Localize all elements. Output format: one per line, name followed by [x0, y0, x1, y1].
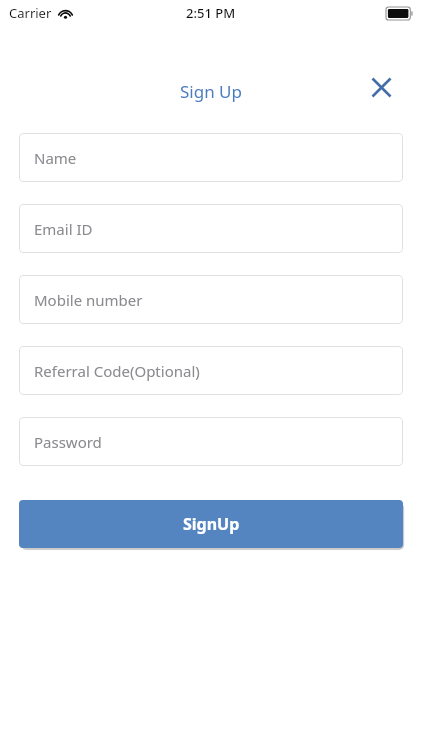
staticText: Name — [34, 148, 77, 168]
button[interactable]: SignUp — [19, 500, 403, 548]
staticText: 2:51 PM — [186, 4, 236, 22]
staticText: Referral Code(Optional) — [34, 361, 200, 381]
button[interactable]: Close — [364, 70, 398, 104]
staticText: SignUp — [183, 513, 240, 535]
staticText: Email ID — [34, 219, 93, 239]
staticText: Password — [34, 432, 102, 452]
button[interactable]: Email ID — [19, 204, 403, 253]
button[interactable]: Referral Code(Optional) — [19, 346, 403, 395]
button[interactable]: Name — [19, 133, 403, 182]
button[interactable]: Mobile number — [19, 275, 403, 324]
button[interactable]: Sign Up — [174, 79, 248, 104]
staticText: Mobile number — [34, 290, 143, 310]
staticText: Sign Up — [180, 80, 242, 103]
button[interactable]: Password — [19, 417, 403, 466]
staticText: Carrier — [9, 4, 52, 22]
